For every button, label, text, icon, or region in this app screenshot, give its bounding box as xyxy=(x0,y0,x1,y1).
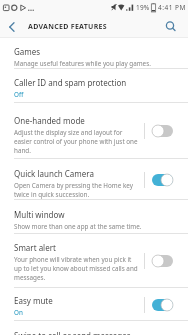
button[interactable]: Multi window xyxy=(0,200,188,234)
staticText: hand. xyxy=(14,146,31,155)
staticText: easier control of your phone with just o… xyxy=(14,137,138,146)
staticText: Quick launch Camera xyxy=(14,168,94,179)
staticText: On xyxy=(14,308,23,317)
staticText: twice in quick succession. xyxy=(14,190,90,199)
staticText: messages. xyxy=(14,273,46,282)
staticText: Open Camera by pressing the Home key xyxy=(14,181,133,190)
staticText: Swipe to call or send messages xyxy=(14,330,131,335)
staticText: up to let you know about missed calls an… xyxy=(14,264,138,273)
staticText: One-handed mode xyxy=(14,115,85,126)
button[interactable]: One-handed mode xyxy=(0,103,188,159)
button[interactable] xyxy=(5,19,19,35)
staticText: Easy mute xyxy=(14,295,53,306)
staticText: Caller ID and spam protection xyxy=(14,77,127,88)
staticText: Show more than one app at the same time. xyxy=(14,222,142,231)
button[interactable]: Games xyxy=(0,38,188,69)
button[interactable]: Easy mute xyxy=(0,288,188,321)
button[interactable] xyxy=(164,20,178,34)
staticText: Smart alert xyxy=(14,242,56,253)
staticText: ADVANCED FEATURES xyxy=(28,22,107,32)
button[interactable]: Quick launch Camera xyxy=(0,159,188,200)
staticText: Your phone will vibrate when you pick it xyxy=(14,255,132,264)
staticText: Off xyxy=(14,90,24,99)
button[interactable]: Swipe to call or send messages xyxy=(0,321,188,335)
button[interactable]: Caller ID and spam protection xyxy=(0,69,188,103)
staticText: 19% xyxy=(136,3,150,12)
staticText: Manage useful features while you play ga… xyxy=(14,59,151,68)
staticText: 4:41 PM xyxy=(158,3,186,12)
staticText: Games xyxy=(14,46,41,57)
button[interactable]: Smart alert xyxy=(0,234,188,288)
staticText: Multi window xyxy=(14,209,65,220)
staticText: Adjust the display size and layout for xyxy=(14,128,123,137)
